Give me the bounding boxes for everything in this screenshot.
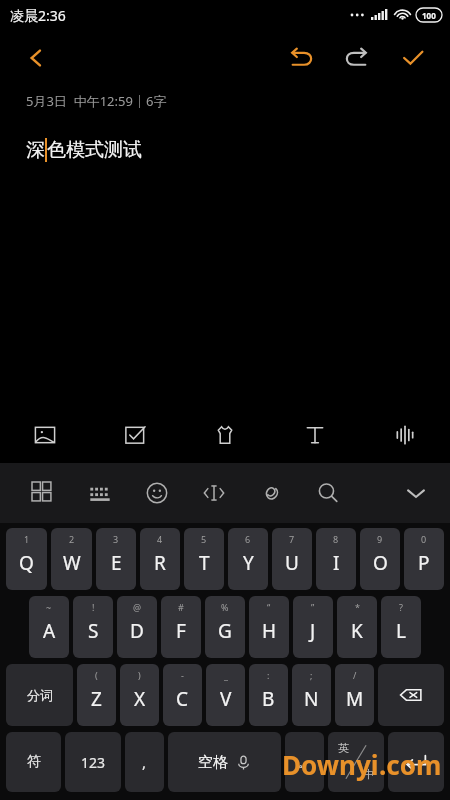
button[interactable]: 8 xyxy=(316,528,356,590)
button[interactable]: 。 xyxy=(285,732,324,792)
button[interactable]: * xyxy=(337,596,377,658)
button[interactable]: / xyxy=(335,664,374,726)
staticText: ( xyxy=(95,669,98,681)
button[interactable]: 0 xyxy=(404,528,444,590)
button[interactable]: ; xyxy=(292,664,331,726)
button[interactable]: Hide keyboard xyxy=(396,473,436,513)
button[interactable]: # xyxy=(161,596,201,658)
button[interactable]: 2 xyxy=(51,528,92,590)
staticText: ” xyxy=(311,601,315,613)
staticText: , xyxy=(142,752,147,772)
staticText: P xyxy=(418,550,430,576)
button[interactable]: Insert image xyxy=(0,407,90,463)
button[interactable]: 5 xyxy=(184,528,224,590)
button[interactable]: Undo xyxy=(280,37,322,79)
button[interactable]: ! xyxy=(73,596,113,658)
button[interactable]: 7 xyxy=(272,528,312,590)
staticText: 深 xyxy=(26,138,45,162)
button[interactable]: @ xyxy=(117,596,157,658)
button[interactable]: Search xyxy=(299,463,356,523)
button[interactable]: Redo xyxy=(336,37,378,79)
staticText: F xyxy=(176,618,186,644)
staticText: ! xyxy=(92,601,95,613)
staticText: 0 xyxy=(421,533,427,545)
staticText: 分词 xyxy=(27,687,53,703)
staticText: 6 xyxy=(245,533,251,545)
staticText: ? xyxy=(399,601,403,613)
button[interactable]: 分词 xyxy=(6,664,73,726)
staticText: L xyxy=(396,618,406,644)
staticText: 。 xyxy=(298,754,311,770)
button[interactable]: 9 xyxy=(360,528,400,590)
button[interactable]: Sticker xyxy=(180,407,270,463)
button[interactable]: Enter xyxy=(388,732,444,792)
staticText: E xyxy=(111,550,122,576)
button[interactable]: Text style xyxy=(270,407,360,463)
button[interactable]: Checklist xyxy=(90,407,180,463)
button[interactable]: - xyxy=(163,664,202,726)
button[interactable]: 符 xyxy=(6,732,61,792)
staticText: T xyxy=(199,550,210,576)
staticText: V xyxy=(220,686,232,712)
staticText: 9 xyxy=(377,533,383,545)
button[interactable]: ~ xyxy=(29,596,69,658)
staticText: O xyxy=(373,550,388,576)
staticText: # xyxy=(178,601,184,613)
button[interactable]: Back xyxy=(14,36,58,80)
button[interactable]: Done xyxy=(392,37,434,79)
staticText: : xyxy=(267,669,270,681)
button[interactable]: 6 xyxy=(228,528,268,590)
button[interactable]: Backspace xyxy=(378,664,444,726)
staticText: / xyxy=(353,669,357,681)
button[interactable]: 1 xyxy=(6,528,47,590)
staticText: M xyxy=(346,686,364,712)
button[interactable]: Voice xyxy=(360,407,450,463)
button[interactable]: ( xyxy=(77,664,116,726)
staticText: 中 xyxy=(363,767,374,781)
staticText: _ xyxy=(224,669,228,681)
button[interactable]: 3 xyxy=(96,528,136,590)
button[interactable]: “ xyxy=(249,596,289,658)
staticText: 3 xyxy=(113,533,119,545)
staticText: W xyxy=(63,550,81,576)
staticText: 5月3日 中午12:59 xyxy=(26,92,133,110)
staticText: 8 xyxy=(333,533,339,545)
button[interactable]: 4 xyxy=(140,528,180,590)
staticText: Downyi xyxy=(282,747,379,782)
staticText: 6字 xyxy=(146,92,167,110)
button[interactable]: ? xyxy=(381,596,421,658)
staticText: G xyxy=(218,618,232,644)
button[interactable]: Switch language xyxy=(328,732,384,792)
staticText: Z xyxy=(91,686,102,712)
staticText: R xyxy=(154,550,166,576)
staticText: I xyxy=(333,550,340,576)
button[interactable]: Apps xyxy=(14,463,71,523)
button[interactable]: 123 xyxy=(65,732,121,792)
staticText: 符 xyxy=(27,753,41,771)
staticText: 100 xyxy=(422,10,436,21)
staticText: 凌晨2:36 xyxy=(10,6,66,25)
staticText: “ xyxy=(267,601,271,613)
staticText: 空格 xyxy=(198,753,228,772)
staticText: 5 xyxy=(201,533,207,545)
button[interactable]: Attach xyxy=(242,463,299,523)
button[interactable]: ) xyxy=(120,664,159,726)
button[interactable]: _ xyxy=(206,664,245,726)
staticText: H xyxy=(262,618,277,644)
button[interactable]: , xyxy=(125,732,164,792)
staticText: C xyxy=(176,686,189,712)
button[interactable]: Keyboard xyxy=(71,463,128,523)
staticText: Q xyxy=(19,550,34,576)
button[interactable]: Move cursor xyxy=(185,463,242,523)
staticText: ) xyxy=(138,669,141,681)
staticText: J xyxy=(310,618,316,644)
button[interactable]: ” xyxy=(293,596,333,658)
button[interactable]: : xyxy=(249,664,288,726)
button[interactable]: % xyxy=(205,596,245,658)
staticText: 4 xyxy=(157,533,163,545)
staticText: 英 xyxy=(338,741,349,755)
button[interactable]: 空格 xyxy=(168,732,281,792)
staticText: N xyxy=(304,686,319,712)
staticText: B xyxy=(262,686,275,712)
button[interactable]: Emoji xyxy=(128,463,185,523)
